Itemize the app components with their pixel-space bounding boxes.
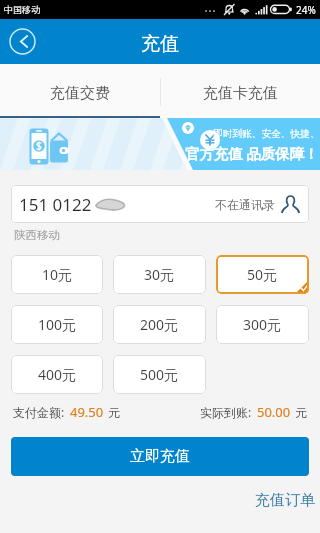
- staticText: 400元: [38, 365, 77, 384]
- staticText: 50.00: [257, 403, 291, 421]
- button[interactable]: 不在通讯录: [215, 194, 300, 214]
- staticText: 24%: [296, 3, 316, 17]
- staticText: 300元: [243, 315, 282, 334]
- button[interactable]: 100元: [11, 305, 103, 344]
- staticText: 元: [295, 405, 307, 420]
- staticText: 支付金额:: [13, 404, 65, 420]
- staticText: 陕西移动: [14, 228, 60, 242]
- staticText: 元: [108, 405, 120, 420]
- staticText: 不在通讯录: [215, 197, 275, 212]
- button[interactable]: 充值订单: [255, 491, 320, 510]
- staticText: 充值订单: [255, 491, 315, 510]
- button[interactable]: 300元: [216, 305, 309, 344]
- staticText: 充值交费: [50, 84, 110, 103]
- staticText: 10元: [42, 265, 73, 284]
- button[interactable]: 充值交费: [0, 64, 160, 118]
- button[interactable]: 30元: [113, 255, 206, 294]
- button[interactable]: Back: [9, 28, 36, 55]
- staticText: 充值: [141, 32, 179, 56]
- staticText: 即时到账、安全、快捷、: [213, 128, 320, 140]
- staticText: 50元: [247, 265, 278, 284]
- staticText: 500元: [140, 365, 179, 384]
- staticText: 充值卡充值: [203, 84, 278, 103]
- button[interactable]: 200元: [113, 305, 206, 344]
- staticText: 49.50: [70, 403, 104, 421]
- button[interactable]: 10元: [11, 255, 103, 294]
- staticText: 100元: [38, 315, 77, 334]
- staticText: 30元: [144, 265, 175, 284]
- staticText: 151 0122: [19, 193, 92, 216]
- staticText: 中国移动: [4, 4, 40, 15]
- staticText: 实际到账:: [200, 404, 252, 420]
- staticText: 200元: [140, 315, 179, 334]
- button[interactable]: 50元: [216, 255, 309, 294]
- staticText: 官方充值 品质保障！: [185, 144, 319, 164]
- staticText: 立即充值: [130, 447, 190, 466]
- button[interactable]: 400元: [11, 355, 103, 394]
- button[interactable]: 充值卡充值: [160, 64, 320, 118]
- button[interactable]: 500元: [113, 355, 206, 394]
- button[interactable]: 立即充值: [11, 437, 309, 476]
